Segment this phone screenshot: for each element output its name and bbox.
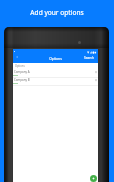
staticText: Options [13,56,98,61]
staticText: Company B [14,78,30,82]
staticText: Add your options [0,8,114,17]
staticText: Search [84,56,95,60]
other: Navigate up [16,56,18,58]
button[interactable]: Add [90,175,97,182]
staticText: Options [15,64,25,68]
button[interactable]: Company B [13,78,98,86]
button[interactable]: Company A [13,70,98,78]
staticText: Company A [14,70,30,74]
